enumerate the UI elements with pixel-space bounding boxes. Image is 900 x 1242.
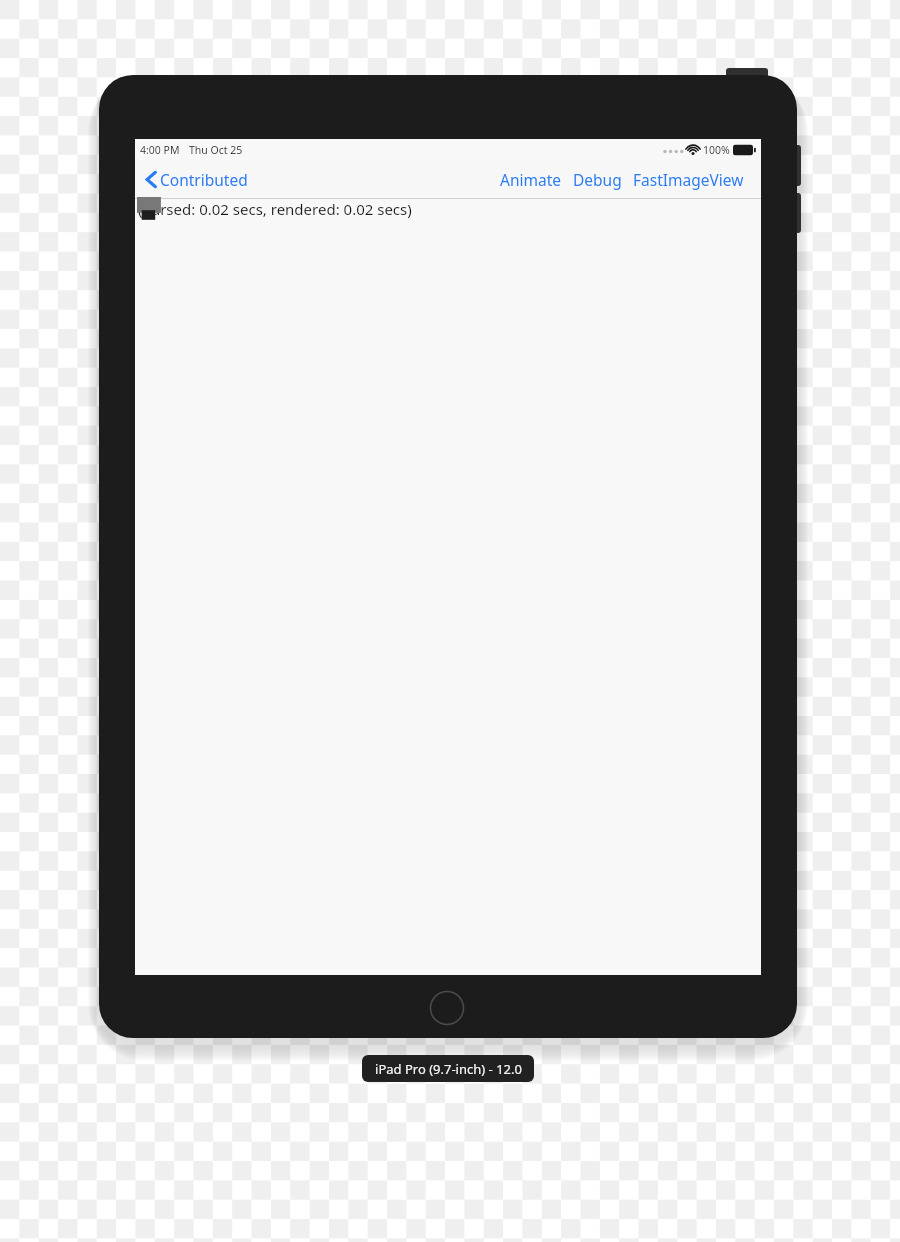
staticText: Debug bbox=[573, 169, 622, 190]
staticText: 4:00 PM bbox=[140, 143, 180, 157]
button[interactable]: Home bbox=[415, 976, 479, 1040]
button[interactable]: FastImageView bbox=[630, 164, 747, 195]
staticText: (parsed: 0.02 secs, rendered: 0.02 secs) bbox=[138, 199, 412, 219]
staticText: Thu Oct 25 bbox=[189, 143, 243, 157]
staticText: FastImageView bbox=[633, 169, 744, 190]
staticText: 100% bbox=[703, 143, 730, 157]
staticText: iPad Pro (9.7-inch) - 12.0 bbox=[375, 1060, 522, 1078]
button[interactable]: Debug bbox=[570, 164, 625, 195]
staticText: Contributed bbox=[160, 169, 248, 190]
button[interactable]: Animate bbox=[497, 164, 565, 195]
button[interactable]: iPad Pro (9.7-inch) - 12.0 bbox=[362, 1055, 534, 1082]
button[interactable]: Contributed bbox=[143, 165, 250, 194]
staticText: Animate bbox=[500, 169, 562, 190]
